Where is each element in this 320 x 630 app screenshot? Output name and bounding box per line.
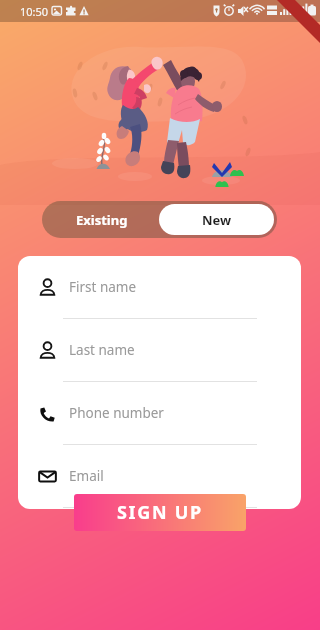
button[interactable]: Email	[18, 445, 301, 507]
staticText: Phone number	[69, 404, 164, 422]
staticText: First name	[69, 278, 137, 296]
staticText: New	[202, 211, 232, 229]
button[interactable]: Last name	[18, 319, 301, 381]
staticText: Email	[69, 467, 104, 485]
staticText: 10:50	[20, 4, 49, 19]
button[interactable]: First name	[18, 256, 301, 318]
button[interactable]: SIGN UP	[74, 494, 246, 531]
staticText: SIGN UP	[117, 500, 203, 525]
button[interactable]: New	[159, 204, 274, 235]
staticText: Existing	[76, 211, 128, 229]
button[interactable]: Existing	[45, 204, 159, 235]
staticText: Last name	[69, 341, 135, 359]
button[interactable]: Phone number	[18, 382, 301, 444]
